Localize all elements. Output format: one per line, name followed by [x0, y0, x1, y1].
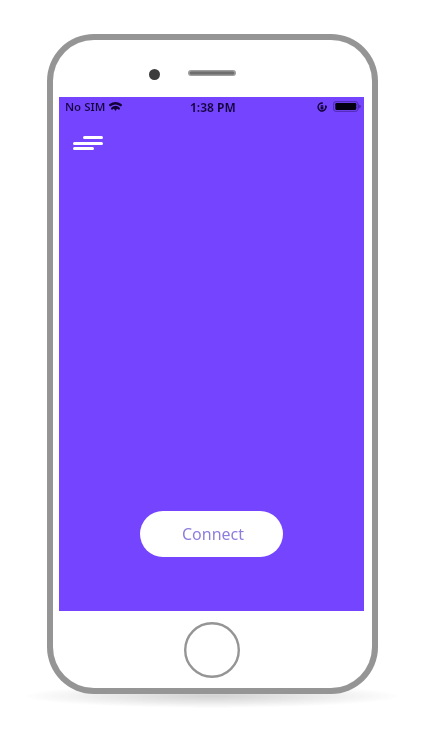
staticText: 1:38 PM	[190, 99, 236, 115]
staticText: Connect	[182, 523, 245, 545]
button[interactable]: Open navigation menu	[73, 136, 104, 150]
staticText: No SIM	[65, 99, 106, 115]
button[interactable]: Connect	[140, 511, 283, 557]
